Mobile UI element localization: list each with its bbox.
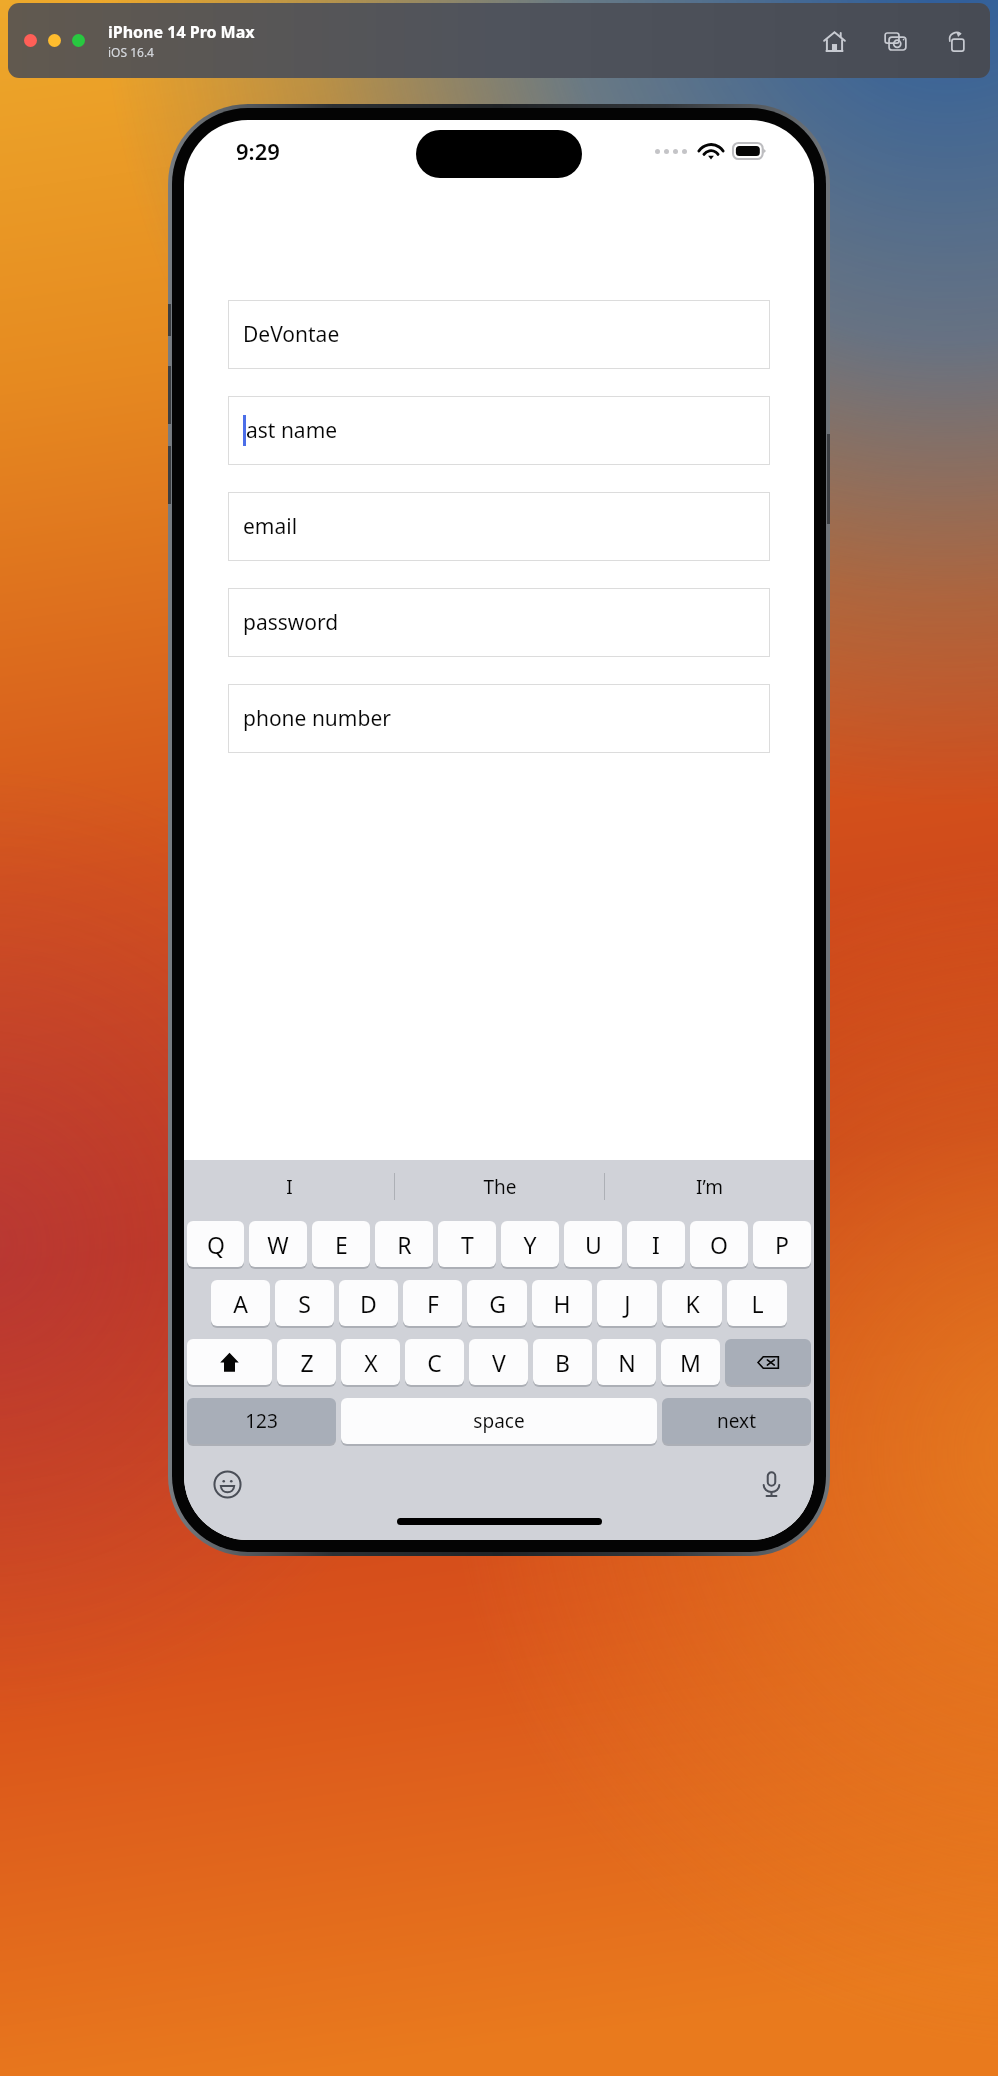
button[interactable] [24,34,37,47]
staticText: U [585,1229,602,1260]
button[interactable]: V [469,1339,528,1385]
button[interactable]: C [405,1339,464,1385]
staticText: iOS 16.4 [108,44,154,60]
staticText: M [680,1347,701,1378]
button[interactable]: password [228,588,770,657]
staticText: I [286,1174,293,1200]
button[interactable]: Emoji [206,1463,248,1505]
staticText: S [298,1288,311,1319]
button[interactable]: I [184,1160,394,1213]
staticText: B [555,1347,570,1378]
button[interactable]: B [533,1339,592,1385]
staticText: W [267,1229,289,1260]
staticText: Q [207,1229,225,1260]
button[interactable]: Screenshot [879,25,911,57]
staticText: O [710,1229,728,1260]
button[interactable]: Rotate [940,25,972,57]
button[interactable]: H [532,1280,592,1326]
button[interactable]: U [564,1221,622,1267]
button[interactable]: phone number [228,684,770,753]
staticText: ast name [246,416,338,445]
staticText: E [335,1229,348,1260]
staticText: space [473,1408,525,1434]
staticText: email [243,512,298,541]
button[interactable]: W [249,1221,307,1267]
button[interactable]: 123 [187,1398,336,1444]
staticText: X [364,1347,378,1378]
staticText: Y [523,1229,537,1260]
staticText: V [492,1347,506,1378]
staticText: K [685,1288,700,1319]
staticText: J [624,1288,631,1319]
button[interactable]: Shift [187,1339,272,1385]
button[interactable]: P [753,1221,811,1267]
button[interactable]: N [597,1339,656,1385]
staticText: F [427,1288,439,1319]
staticText: next [717,1408,756,1434]
staticText: N [618,1347,636,1378]
staticText: phone number [243,704,391,733]
button[interactable]: email [228,492,770,561]
button[interactable]: Dictation [750,1463,792,1505]
staticText: The [483,1174,517,1200]
staticText: H [553,1288,571,1319]
button[interactable]: E [312,1221,370,1267]
staticText: P [775,1229,789,1260]
button[interactable]: Home [818,25,850,57]
staticText: C [427,1347,442,1378]
staticText: password [243,608,339,637]
staticText: A [233,1288,248,1319]
button[interactable]: L [727,1280,787,1326]
staticText: G [489,1288,506,1319]
button[interactable]: G [467,1280,527,1326]
staticText: T [461,1229,474,1260]
button[interactable]: next [662,1398,811,1444]
button[interactable]: I [627,1221,685,1267]
button[interactable]: The [395,1160,604,1213]
button[interactable]: J [597,1280,657,1326]
button[interactable]: D [339,1280,398,1326]
button[interactable] [48,34,61,47]
staticText: L [751,1288,764,1319]
staticText: 9:29 [236,136,280,166]
staticText: iPhone 14 Pro Max [108,21,255,43]
button[interactable]: Y [501,1221,559,1267]
staticText: DeVontae [243,320,340,349]
button[interactable]: Z [277,1339,336,1385]
staticText: 123 [245,1408,278,1434]
button[interactable]: S [275,1280,334,1326]
button[interactable]: Backspace [725,1339,811,1385]
staticText: I [652,1229,660,1260]
staticText: D [360,1288,377,1319]
button[interactable]: ast name [228,396,770,465]
button[interactable]: F [403,1280,462,1326]
button[interactable]: R [375,1221,433,1267]
button[interactable]: space [341,1398,657,1444]
button[interactable]: O [690,1221,748,1267]
button[interactable]: T [438,1221,496,1267]
button[interactable]: A [211,1280,270,1326]
button[interactable]: M [661,1339,720,1385]
button[interactable] [72,34,85,47]
staticText: I’m [696,1174,723,1200]
button[interactable]: K [662,1280,722,1326]
button[interactable]: Q [187,1221,244,1267]
staticText: Z [300,1347,314,1378]
button[interactable]: I’m [605,1160,814,1213]
button[interactable]: DeVontae [228,300,770,369]
staticText: R [397,1229,412,1260]
button[interactable]: X [341,1339,400,1385]
